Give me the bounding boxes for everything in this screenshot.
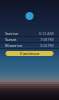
button[interactable]: Sunrise	[0, 31, 59, 36]
staticText: Continue	[20, 51, 39, 56]
staticText: Moonrise	[5, 43, 22, 48]
staticText: 6:12 AM	[39, 31, 54, 36]
button[interactable]: Moonrise	[0, 43, 59, 48]
staticText: 9:24 PM	[40, 43, 54, 48]
button[interactable]: Sunset	[0, 37, 59, 42]
staticText: Sunrise	[5, 31, 18, 36]
staticText: 7:58 PM	[40, 37, 54, 42]
button[interactable]: Continue	[5, 51, 53, 56]
staticText: Sunset	[5, 37, 16, 42]
